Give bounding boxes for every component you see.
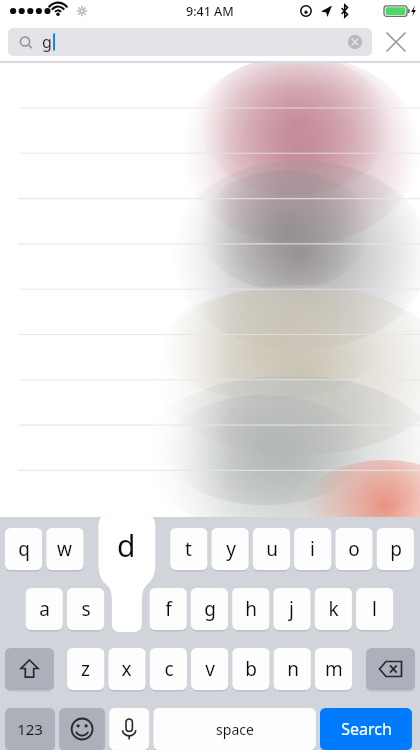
button[interactable]: q (5, 528, 42, 570)
button[interactable]: f (150, 588, 187, 630)
button[interactable]: z (67, 648, 104, 690)
button[interactable]: g (191, 588, 228, 630)
staticText: x (121, 656, 132, 682)
staticText: l (372, 596, 377, 622)
staticText: c (164, 656, 174, 682)
button[interactable]: v (191, 648, 228, 690)
staticText: n (287, 656, 299, 682)
staticText: g (42, 31, 52, 53)
staticText: i (310, 536, 315, 562)
button[interactable]: u (253, 528, 290, 570)
staticText: space (216, 720, 254, 739)
button[interactable]: 123 (5, 708, 55, 750)
staticText: m (325, 656, 343, 682)
button[interactable]: Search (320, 708, 412, 750)
button[interactable]: g (8, 28, 372, 56)
staticText: p (390, 536, 402, 562)
button[interactable] (88, 528, 125, 570)
button[interactable]: p (377, 528, 414, 570)
button[interactable]: w (46, 528, 83, 570)
button[interactable]: Close search (380, 26, 412, 58)
staticText: h (245, 596, 257, 622)
staticText: k (328, 596, 339, 622)
button[interactable] (129, 528, 166, 570)
staticText: f (165, 596, 172, 622)
button[interactable]: Emoji (59, 708, 105, 750)
button[interactable] (108, 588, 145, 630)
button[interactable]: s (67, 588, 104, 630)
button[interactable]: t (170, 528, 207, 570)
staticText: g (204, 596, 216, 622)
staticText: 123 (17, 719, 43, 739)
button[interactable]: x (108, 648, 145, 690)
staticText: t (185, 536, 192, 562)
staticText: j (289, 596, 294, 622)
button[interactable]: l (356, 588, 393, 630)
staticText: u (266, 536, 278, 562)
button[interactable]: m (315, 648, 352, 690)
staticText: 9:41 AM (186, 3, 234, 20)
button[interactable]: Shift (5, 648, 54, 690)
button[interactable]: b (232, 648, 269, 690)
button[interactable]: o (335, 528, 372, 570)
button[interactable]: n (274, 648, 311, 690)
staticText: d (117, 525, 136, 566)
staticText: b (245, 656, 257, 682)
staticText: Search (341, 718, 392, 740)
button[interactable]: Dictation (109, 708, 149, 750)
button[interactable]: i (294, 528, 331, 570)
staticText: w (57, 536, 72, 562)
button[interactable]: space (153, 708, 316, 750)
staticText: v (205, 656, 215, 682)
staticText: y (226, 536, 236, 562)
staticText: o (348, 536, 360, 562)
button[interactable]: c (150, 648, 187, 690)
button[interactable]: k (315, 588, 352, 630)
staticText: q (18, 536, 30, 562)
staticText: z (81, 656, 90, 682)
button[interactable]: h (232, 588, 269, 630)
button[interactable]: Backspace (366, 648, 415, 690)
staticText: a (39, 596, 50, 622)
button[interactable]: j (273, 588, 310, 630)
button[interactable]: a (26, 588, 63, 630)
staticText: s (81, 596, 91, 622)
button[interactable]: y (212, 528, 249, 570)
